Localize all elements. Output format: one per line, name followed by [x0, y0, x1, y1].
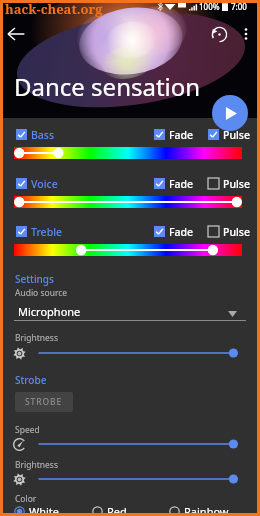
button[interactable]: Fade [154, 177, 204, 189]
button[interactable]: Pulse [208, 177, 253, 189]
staticText: Fade [169, 225, 194, 237]
staticText: Rainbow [184, 504, 229, 516]
button[interactable]: Red [92, 504, 169, 516]
staticText: Bass [31, 128, 55, 140]
button[interactable] [37, 343, 245, 363]
button[interactable] [14, 147, 242, 159]
staticText: Color [15, 493, 37, 505]
button[interactable]: Fade [154, 225, 204, 237]
staticText: Voice [31, 177, 58, 189]
button[interactable]: Microphone [14, 303, 246, 321]
staticText: Brightness [15, 459, 58, 471]
staticText: Brightness [15, 332, 58, 344]
button[interactable] [14, 196, 242, 208]
button[interactable]: Pulse [208, 128, 253, 140]
button[interactable] [14, 244, 242, 256]
button[interactable]: History [211, 26, 228, 43]
staticText: Microphone [18, 304, 81, 319]
staticText: Treble [31, 225, 63, 237]
staticText: Strobe [15, 373, 47, 387]
button[interactable]: STROBE [15, 392, 73, 412]
staticText: 7:00 [231, 1, 247, 12]
staticText: White [29, 504, 60, 516]
staticText: Pulse [223, 128, 250, 140]
staticText: Settings [15, 272, 54, 286]
staticText: hack-cheat.org [5, 0, 103, 18]
staticText: Fade [169, 177, 194, 189]
button[interactable]: Treble [16, 225, 71, 237]
button[interactable]: Fade [154, 128, 204, 140]
staticText: STROBE [25, 396, 63, 408]
button[interactable]: Bass [16, 128, 71, 140]
staticText: Pulse [223, 225, 250, 237]
staticText: Fade [169, 128, 194, 140]
staticText: Dance sensation [14, 70, 201, 103]
button[interactable]: Voice [16, 177, 71, 189]
staticText: Pulse [223, 177, 250, 189]
staticText: 100% [199, 1, 220, 12]
staticText: Red [107, 504, 127, 516]
button[interactable]: Play [212, 95, 248, 131]
staticText: Audio source [15, 287, 68, 299]
button[interactable]: Rainbow [169, 504, 246, 516]
button[interactable]: More options [238, 26, 254, 42]
button[interactable]: Pulse [208, 225, 253, 237]
button[interactable] [37, 434, 245, 454]
button[interactable]: Back [6, 24, 26, 44]
staticText: Speed [15, 424, 40, 436]
button[interactable]: White [14, 504, 92, 516]
button[interactable] [37, 469, 245, 489]
